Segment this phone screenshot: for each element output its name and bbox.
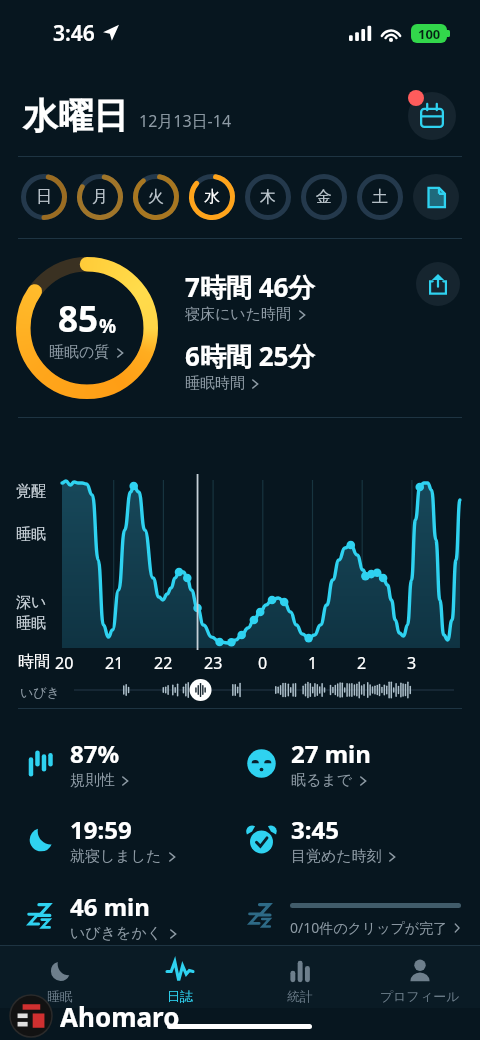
staticText: 規則性	[70, 771, 115, 790]
button[interactable]: Notes	[413, 174, 459, 220]
staticText: 土	[372, 187, 388, 207]
staticText: 睡眠	[47, 988, 73, 1004]
staticText: 12月13日-14	[139, 110, 232, 132]
staticText: 覚醒	[16, 482, 46, 501]
staticText: 100	[418, 25, 441, 43]
button[interactable]: 46 min	[25, 887, 233, 945]
button[interactable]: 土	[357, 174, 403, 220]
staticText: 22	[154, 652, 173, 674]
staticText: 眠るまで	[291, 771, 353, 790]
button[interactable]: 日誌	[120, 946, 240, 1008]
staticText: 7時間 46分	[185, 269, 315, 305]
staticText: 寝床にいた時間	[185, 305, 292, 324]
button[interactable]: 19:59	[25, 810, 233, 868]
staticText: 月	[92, 187, 108, 207]
staticText: 2	[357, 652, 367, 674]
button[interactable]: 金	[301, 174, 347, 220]
button[interactable]: 木	[245, 174, 291, 220]
staticText: 水	[204, 187, 220, 207]
staticText: 目覚めた時刻	[291, 847, 382, 866]
button[interactable]: Share	[416, 262, 460, 306]
button[interactable]: Calendar	[408, 92, 456, 140]
staticText: 46 min	[70, 890, 150, 923]
staticText: 0	[258, 652, 268, 674]
button[interactable]: プロフィール	[360, 946, 480, 1008]
staticText: 3:45	[291, 813, 339, 846]
staticText: 火	[148, 187, 164, 207]
staticText: 3	[407, 652, 417, 674]
button[interactable]: 日	[21, 174, 67, 220]
button[interactable]: 月	[77, 174, 123, 220]
button[interactable]: 水	[189, 174, 235, 220]
staticText: 87%	[70, 737, 120, 770]
button[interactable]: 7時間 46分	[185, 269, 315, 324]
staticText: 20	[55, 652, 74, 674]
staticText: 6時間 25分	[185, 338, 315, 374]
staticText: 睡眠	[16, 614, 46, 633]
staticText: 就寝しました	[70, 847, 162, 866]
staticText: 23	[204, 652, 223, 674]
staticText: 85	[58, 295, 99, 343]
button[interactable]: 火	[133, 174, 179, 220]
staticText: 27 min	[291, 737, 371, 770]
staticText: 水曜日	[23, 94, 128, 138]
staticText: 21	[105, 652, 124, 674]
staticText: いびき	[20, 684, 60, 700]
button[interactable]: 睡眠	[0, 946, 120, 1008]
staticText: 時間	[18, 652, 50, 672]
staticText: いびきをかく	[70, 924, 163, 943]
staticText: 19:59	[70, 813, 132, 846]
staticText: %	[99, 313, 117, 339]
button[interactable]: 統計	[240, 946, 360, 1008]
button[interactable]: 3:45	[246, 810, 454, 868]
staticText: 日誌	[167, 988, 193, 1004]
staticText: 睡眠時間	[185, 374, 245, 393]
staticText: 金	[316, 187, 332, 207]
staticText: 日	[36, 187, 52, 207]
staticText: 深い	[16, 593, 47, 612]
staticText: 睡眠	[16, 525, 46, 544]
button[interactable]: 87%	[25, 734, 233, 792]
button[interactable]: 0/10件のクリップが完了	[246, 887, 461, 945]
button[interactable]: 85	[16, 257, 158, 399]
staticText: 1	[308, 652, 318, 674]
staticText: 木	[260, 187, 276, 207]
staticText: 統計	[287, 988, 313, 1004]
button[interactable]: 6時間 25分	[185, 338, 315, 393]
staticText: 睡眠の質	[49, 343, 110, 362]
staticText: 3:46	[53, 19, 95, 48]
staticText: 0/10件のクリップが完了	[290, 918, 448, 937]
button[interactable]: 27 min	[246, 734, 454, 792]
staticText: Ahomaro	[60, 999, 180, 1034]
staticText: プロフィール	[380, 988, 460, 1004]
